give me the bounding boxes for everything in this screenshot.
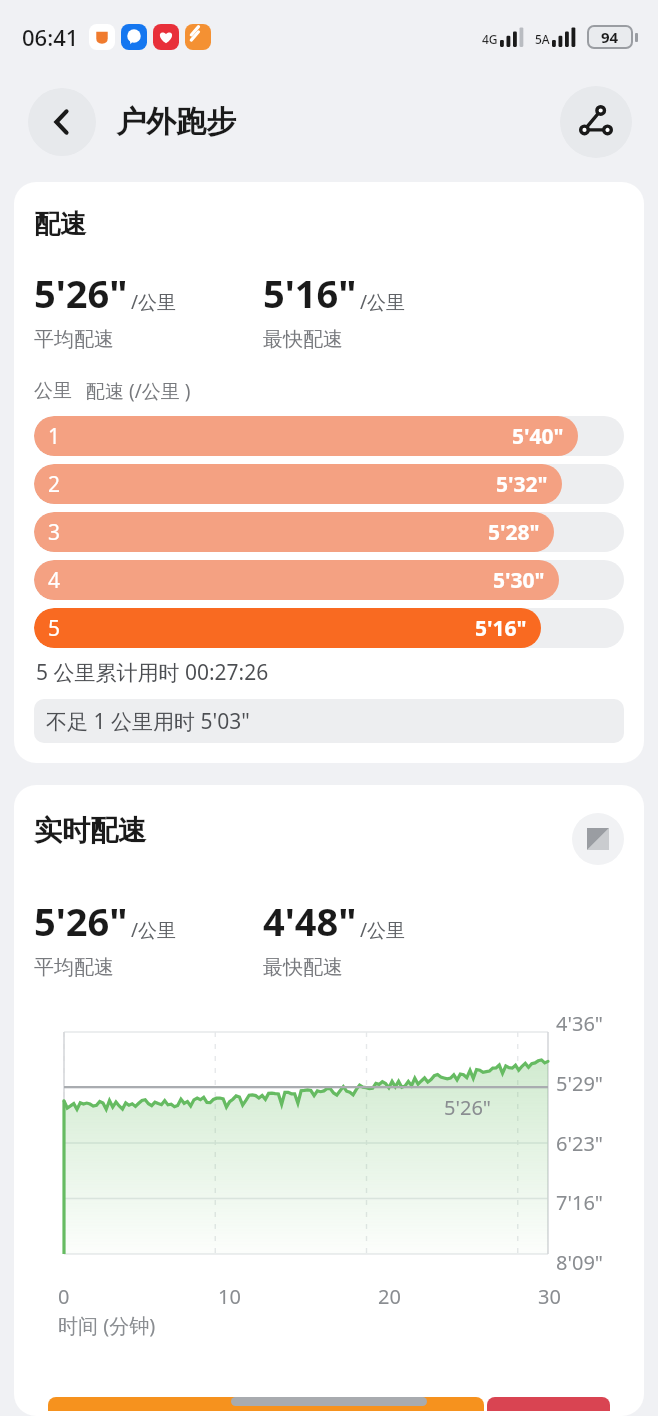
button[interactable]: 1 <box>34 416 624 456</box>
staticText: 4 <box>48 566 61 595</box>
button[interactable]: 返回 <box>28 88 96 156</box>
staticText: 5'28" <box>488 518 540 547</box>
staticText: 20 <box>378 1283 401 1310</box>
staticText: 5'26" <box>444 1094 491 1121</box>
button[interactable] <box>487 1397 610 1411</box>
staticText: 户外跑步 <box>116 103 236 141</box>
staticText: 4G <box>482 31 498 47</box>
staticText: 06:41 <box>22 22 79 52</box>
staticText: 5 公里累计用时 00:27:26 <box>36 658 269 687</box>
staticText: 2 <box>48 470 61 499</box>
button[interactable]: 4 <box>34 560 624 600</box>
staticText: /公里 <box>131 917 177 943</box>
staticText: 5'16" <box>475 614 527 643</box>
button[interactable]: 2 <box>34 464 624 504</box>
button[interactable]: 5 <box>34 608 624 648</box>
staticText: 7'16" <box>556 1189 636 1216</box>
staticText: 5'32" <box>496 470 548 499</box>
staticText: 4'48" <box>263 895 357 947</box>
staticText: /公里 <box>131 289 177 315</box>
staticText: 平均配速 <box>34 955 114 980</box>
staticText: 0 <box>58 1283 70 1310</box>
staticText: 3 <box>48 518 61 547</box>
staticText: 最快配速 <box>263 955 343 980</box>
staticText: 5'40" <box>512 422 564 451</box>
staticText: 不足 1 公里用时 5'03" <box>46 707 250 736</box>
staticText: 1 <box>48 422 61 451</box>
staticText: 5'16" <box>263 267 357 319</box>
button[interactable]: 3 <box>34 512 624 552</box>
staticText: 5'26" <box>34 267 128 319</box>
staticText: 配速 (/公里 ) <box>86 378 191 404</box>
staticText: 配速 <box>34 208 86 241</box>
button[interactable]: 全屏 <box>572 813 624 865</box>
button[interactable]: 分享 <box>560 86 632 158</box>
staticText: 平均配速 <box>34 327 114 352</box>
button[interactable] <box>48 1397 484 1411</box>
staticText: 5'30" <box>493 566 545 595</box>
staticText: 10 <box>218 1283 241 1310</box>
staticText: 公里 <box>34 379 72 403</box>
staticText: /公里 <box>360 917 406 943</box>
staticText: 5 <box>48 614 61 643</box>
staticText: 4'36" <box>556 1010 636 1037</box>
staticText: 6'23" <box>556 1130 636 1157</box>
staticText: 5'29" <box>556 1070 636 1097</box>
staticText: 时间 (分钟) <box>58 1312 156 1339</box>
staticText: 8'09" <box>556 1249 636 1276</box>
staticText: 5A <box>535 31 550 47</box>
staticText: 30 <box>538 1283 561 1310</box>
staticText: 5'26" <box>34 895 128 947</box>
staticText: 最快配速 <box>263 327 343 352</box>
staticText: 实时配速 <box>34 813 146 848</box>
staticText: 94 <box>601 27 619 47</box>
staticText: /公里 <box>360 289 406 315</box>
